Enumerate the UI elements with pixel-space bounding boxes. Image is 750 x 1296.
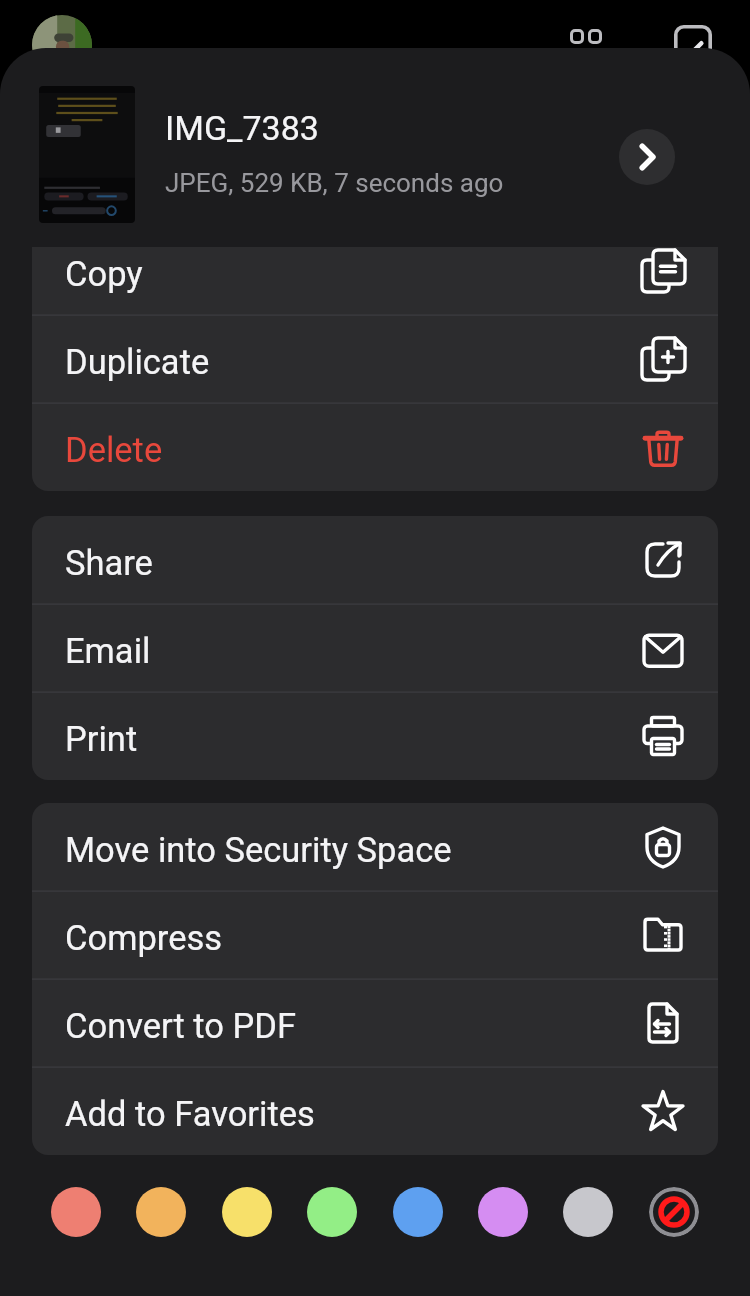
staticText: Compress [65,918,638,958]
staticText: IMG_7383 [165,108,319,148]
staticText: Delete [65,430,638,470]
staticText: Convert to PDF [65,1006,638,1046]
button[interactable]: Delete [32,403,718,491]
staticText: Email [65,631,638,671]
button[interactable]: No color [649,1187,699,1237]
staticText: Add to Favorites [65,1094,638,1134]
button[interactable]: Compress [32,891,718,979]
button[interactable]: Duplicate [32,315,718,403]
button[interactable]: Convert to PDF [32,979,718,1067]
button[interactable]: Color tag [307,1187,357,1237]
button[interactable]: Email [32,604,718,692]
button[interactable]: Add to Favorites [32,1067,718,1155]
staticText: Share [65,543,638,583]
button[interactable]: More info [619,129,675,185]
button[interactable]: Share [32,516,718,604]
button[interactable]: Color tag [393,1187,443,1237]
staticText: Print [65,719,638,759]
staticText: Copy [65,254,638,294]
button[interactable]: Color tag [222,1187,272,1237]
button[interactable]: Color tag [136,1187,186,1237]
button[interactable]: Color tag [478,1187,528,1237]
button[interactable]: Color tag [51,1187,101,1237]
button[interactable]: Grid view [570,29,602,44]
staticText: Move into Security Space [65,830,638,870]
staticText: Duplicate [65,342,638,382]
button[interactable]: Move into Security Space [32,803,718,891]
button[interactable]: Copy [32,247,718,315]
staticText: JPEG, 529 KB, 7 seconds ago [165,168,504,198]
button[interactable]: Color tag [563,1187,613,1237]
button[interactable]: Print [32,692,718,780]
button[interactable]: Select [674,25,712,63]
